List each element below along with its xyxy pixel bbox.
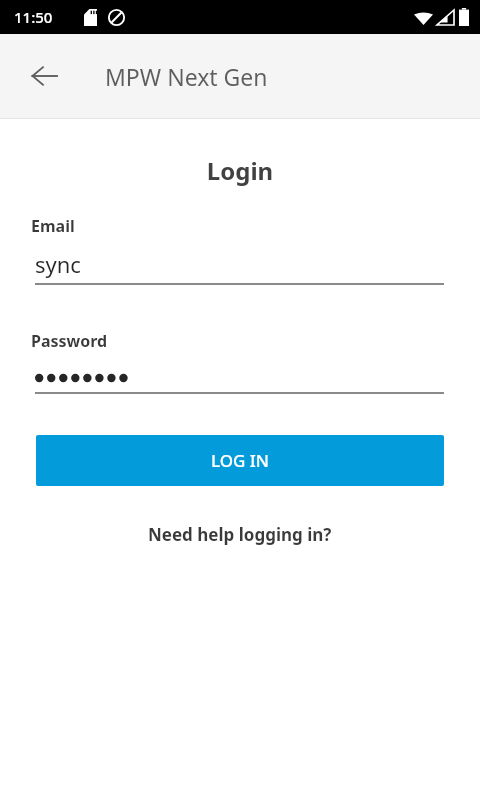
staticText: Email [31,215,75,237]
button[interactable]: sync [35,249,444,285]
staticText: Login [0,154,480,187]
staticText: MPW Next Gen [105,61,268,92]
button[interactable] [35,364,444,394]
button[interactable]: Need help logging in? [136,517,344,552]
button[interactable]: Back [18,50,70,102]
staticText: LOG IN [211,449,270,472]
staticText: sync [35,249,81,279]
staticText: Password [31,330,108,352]
button[interactable]: LOG IN [36,435,444,486]
staticText: Need help logging in? [148,523,332,546]
staticText: 11:50 [14,7,53,27]
